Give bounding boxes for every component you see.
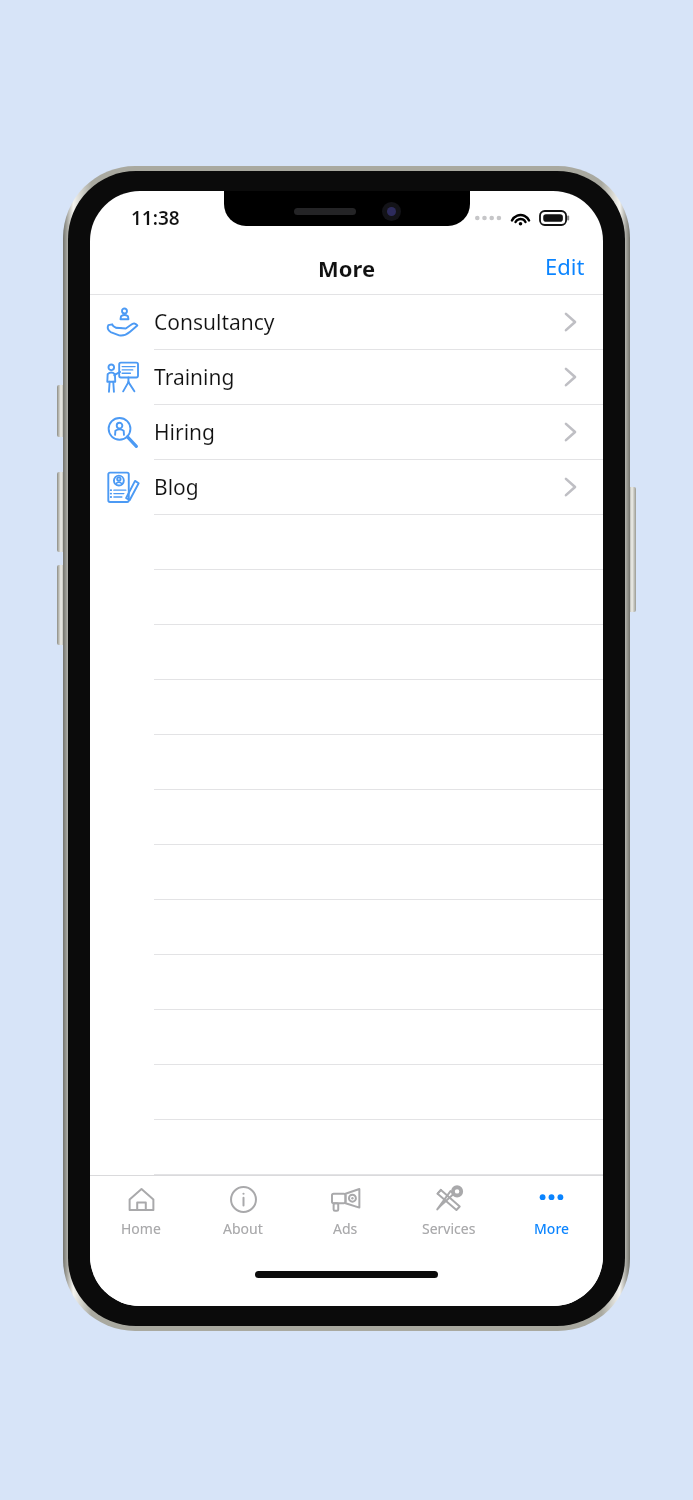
staticText: 11:38	[131, 205, 180, 231]
staticText: Home	[121, 1219, 161, 1238]
button[interactable]: Services	[397, 1176, 500, 1252]
button[interactable]: More	[500, 1176, 603, 1252]
staticText: Hiring	[154, 418, 215, 447]
button[interactable]: Edit	[527, 243, 603, 289]
button[interactable]: Home	[90, 1176, 192, 1252]
button[interactable]: Training	[90, 350, 603, 404]
button[interactable]: Consultancy	[90, 295, 603, 349]
staticText: About	[223, 1219, 263, 1238]
staticText: Edit	[545, 251, 585, 281]
button[interactable]: Ads	[294, 1176, 397, 1252]
staticText: Training	[154, 363, 235, 392]
staticText: Blog	[154, 473, 199, 502]
staticText: More	[534, 1219, 570, 1238]
staticText: Services	[422, 1219, 476, 1238]
button[interactable]: Blog	[90, 460, 603, 514]
button[interactable]: About	[192, 1176, 294, 1252]
button[interactable]: Hiring	[90, 405, 603, 459]
staticText: More	[318, 253, 376, 283]
staticText: Consultancy	[154, 308, 275, 337]
staticText: Ads	[333, 1219, 358, 1238]
